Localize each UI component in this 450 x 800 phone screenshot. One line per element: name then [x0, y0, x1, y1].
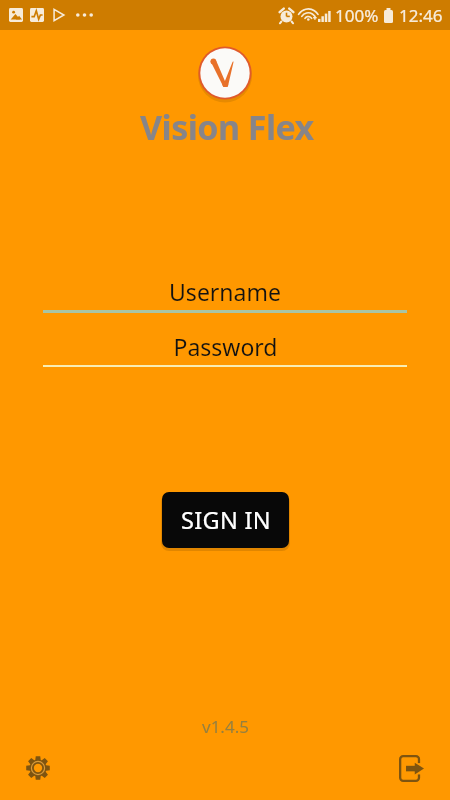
button[interactable]: Settings: [18, 748, 58, 788]
button[interactable]: Exit: [391, 748, 431, 788]
staticText: Username: [169, 276, 281, 307]
button[interactable]: Username: [43, 272, 407, 313]
staticText: 100%: [335, 4, 379, 27]
staticText: v1.4.5: [202, 715, 249, 738]
staticText: SIGN IN: [181, 504, 271, 536]
staticText: Password: [173, 331, 278, 362]
button[interactable]: Password: [43, 327, 407, 367]
button[interactable]: SIGN IN: [162, 492, 289, 548]
staticText: Vision Flex: [140, 104, 314, 150]
staticText: 12:46: [399, 4, 443, 27]
